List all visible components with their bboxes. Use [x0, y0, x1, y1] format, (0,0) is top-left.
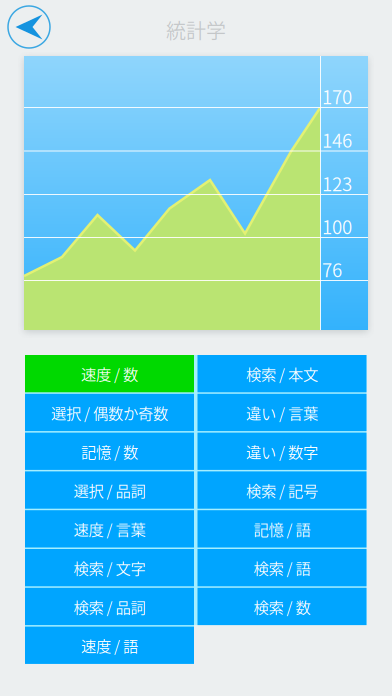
button[interactable]: 検索 / 数 — [197, 588, 366, 625]
button[interactable]: 速度 / 数 — [25, 355, 194, 392]
button[interactable]: 速度 / 言葉 — [25, 510, 194, 547]
button[interactable]: 違い / 数字 — [197, 433, 366, 470]
staticText: 統計学 — [166, 15, 226, 44]
staticText: 記憶 / 数 — [81, 440, 138, 462]
button[interactable]: 記憶 / 語 — [197, 510, 366, 547]
staticText: 100 — [322, 212, 352, 239]
staticText: 170 — [322, 82, 352, 109]
button[interactable]: 検索 / 記号 — [197, 471, 366, 509]
staticText: 違い / 言葉 — [246, 401, 318, 423]
button[interactable]: 検索 / 品詞 — [25, 588, 194, 625]
staticText: 検索 / 語 — [253, 556, 310, 579]
button[interactable]: 検索 / 語 — [197, 549, 366, 586]
staticText: 速度 / 数 — [81, 362, 138, 385]
staticText: 速度 / 言葉 — [73, 518, 145, 540]
staticText: 検索 / 数 — [253, 595, 310, 617]
staticText: 記憶 / 語 — [253, 518, 310, 540]
staticText: 検索 / 文字 — [73, 556, 145, 579]
button[interactable]: 速度 / 語 — [25, 627, 194, 664]
staticText: 違い / 数字 — [246, 440, 318, 462]
staticText: 76 — [322, 255, 342, 282]
button[interactable]: 記憶 / 数 — [25, 433, 194, 470]
staticText: 146 — [322, 126, 352, 153]
staticText: 123 — [322, 169, 352, 196]
button[interactable]: 検索 / 本文 — [197, 355, 366, 392]
button[interactable]: 検索 / 文字 — [25, 549, 194, 586]
staticText: 選択 / 品詞 — [73, 479, 145, 501]
button[interactable]: Back — [5, 3, 53, 51]
button[interactable]: 選択 / 偶数か奇数 — [25, 394, 194, 431]
button[interactable]: 違い / 言葉 — [197, 394, 366, 431]
staticText: 選択 / 偶数か奇数 — [51, 401, 168, 423]
staticText: 検索 / 記号 — [246, 479, 318, 501]
staticText: 検索 / 本文 — [246, 362, 318, 385]
button[interactable]: 選択 / 品詞 — [25, 471, 194, 509]
staticText: 検索 / 品詞 — [73, 595, 145, 617]
staticText: 速度 / 語 — [81, 634, 138, 656]
